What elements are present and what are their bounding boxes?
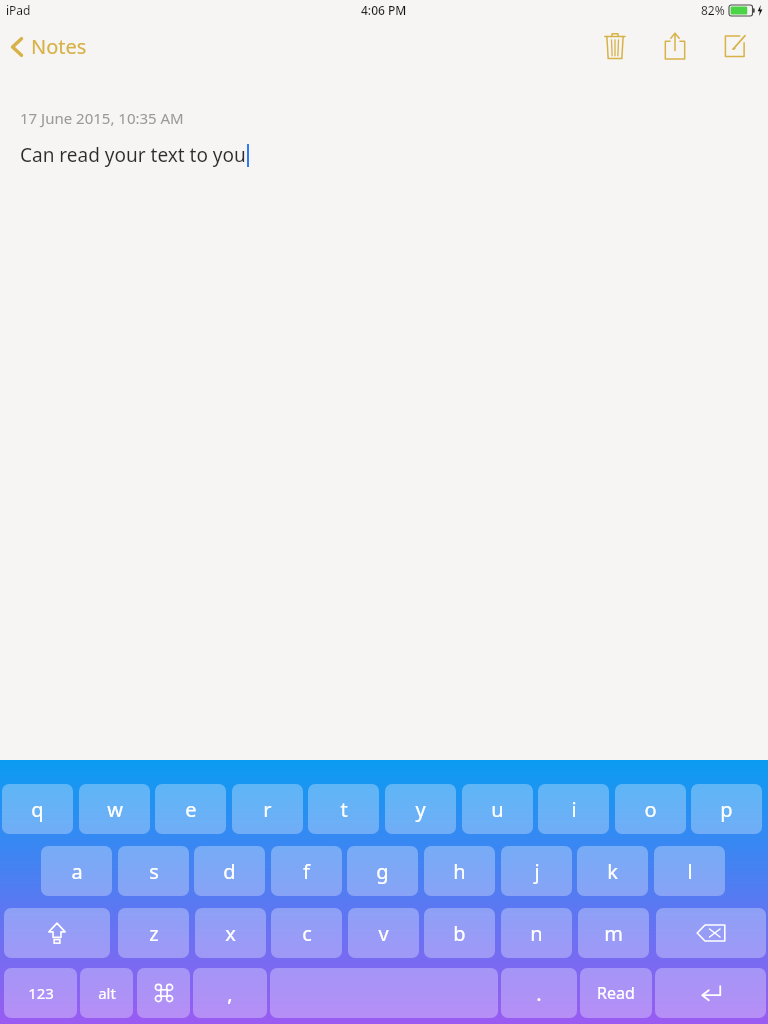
- button[interactable]: Delete: [598, 29, 632, 63]
- button[interactable]: c: [271, 908, 342, 958]
- button[interactable]: w: [79, 784, 150, 834]
- button[interactable]: g: [347, 846, 418, 896]
- staticText: 4:06 PM: [361, 2, 407, 18]
- button[interactable]: q: [2, 784, 73, 834]
- staticText: j: [534, 858, 540, 885]
- button[interactable]: r: [232, 784, 303, 834]
- staticText: a: [71, 858, 83, 885]
- button[interactable]: u: [462, 784, 533, 834]
- button[interactable]: n: [501, 908, 572, 958]
- button[interactable]: b: [424, 908, 495, 958]
- button[interactable]: k: [577, 846, 648, 896]
- staticText: u: [491, 796, 504, 823]
- button[interactable]: f: [271, 846, 342, 896]
- staticText: Can read your text to you: [20, 142, 246, 168]
- staticText: alt: [98, 983, 116, 1003]
- staticText: v: [378, 920, 389, 947]
- button[interactable]: Backspace: [656, 908, 766, 958]
- staticText: p: [720, 796, 733, 823]
- staticText: c: [302, 920, 312, 947]
- button[interactable]: y: [385, 784, 456, 834]
- staticText: g: [376, 858, 389, 885]
- button[interactable]: Read: [580, 968, 652, 1018]
- staticText: t: [340, 796, 348, 823]
- button[interactable]: h: [424, 846, 495, 896]
- button[interactable]: Return: [655, 968, 766, 1018]
- staticText: s: [149, 858, 159, 885]
- staticText: b: [453, 920, 466, 947]
- button[interactable]: Share: [658, 29, 692, 63]
- button[interactable]: Space: [270, 968, 498, 1018]
- staticText: x: [225, 920, 236, 947]
- button[interactable]: e: [155, 784, 226, 834]
- button[interactable]: x: [195, 908, 266, 958]
- staticText: Notes: [31, 33, 87, 60]
- staticText: ,: [227, 980, 233, 1007]
- staticText: i: [571, 796, 577, 823]
- staticText: q: [31, 796, 44, 823]
- staticText: Read: [597, 982, 635, 1004]
- button[interactable]: Compose: [718, 29, 752, 63]
- staticText: z: [149, 920, 159, 947]
- staticText: y: [415, 796, 426, 823]
- button[interactable]: l: [654, 846, 725, 896]
- button[interactable]: Command: [137, 968, 190, 1018]
- button[interactable]: t: [308, 784, 379, 834]
- staticText: h: [453, 858, 466, 885]
- button[interactable]: Notes: [0, 27, 97, 66]
- staticText: e: [185, 796, 197, 823]
- button[interactable]: v: [348, 908, 419, 958]
- button[interactable]: p: [691, 784, 762, 834]
- button[interactable]: o: [615, 784, 686, 834]
- staticText: k: [607, 858, 618, 885]
- staticText: n: [530, 920, 543, 947]
- staticText: d: [223, 858, 236, 885]
- button[interactable]: j: [501, 846, 572, 896]
- staticText: 123: [28, 983, 54, 1003]
- button[interactable]: m: [578, 908, 649, 958]
- staticText: r: [263, 796, 272, 823]
- staticText: m: [604, 920, 623, 947]
- button[interactable]: 123: [4, 968, 77, 1018]
- staticText: iPad: [6, 2, 31, 18]
- button[interactable]: z: [118, 908, 189, 958]
- button[interactable]: a: [41, 846, 112, 896]
- staticText: o: [644, 796, 657, 823]
- button[interactable]: .: [501, 968, 577, 1018]
- button[interactable]: alt: [80, 968, 133, 1018]
- button[interactable]: d: [194, 846, 265, 896]
- staticText: f: [303, 858, 310, 885]
- staticText: .: [536, 980, 542, 1007]
- button[interactable]: Shift: [4, 908, 110, 958]
- button[interactable]: ,: [193, 968, 267, 1018]
- staticText: l: [687, 858, 693, 885]
- staticText: 17 June 2015, 10:35 AM: [20, 108, 184, 128]
- staticText: w: [107, 796, 123, 823]
- button[interactable]: s: [118, 846, 189, 896]
- staticText: 82%: [701, 2, 725, 18]
- button[interactable]: i: [538, 784, 609, 834]
